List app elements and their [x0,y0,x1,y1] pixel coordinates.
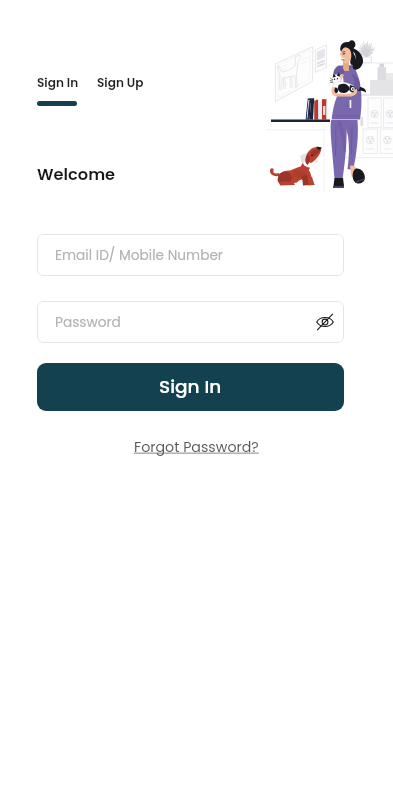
staticText: Email ID/ Mobile Number [55,246,223,265]
staticText: Welcome [37,163,116,186]
button[interactable]: Sign In [37,363,344,411]
button[interactable]: Forgot Password? [134,437,259,457]
staticText: Sign In [37,74,79,91]
button[interactable]: Email ID/ Mobile Number [37,234,344,276]
staticText: Password [55,313,121,332]
button[interactable]: Sign Up [97,74,144,91]
button[interactable]: Show password [311,308,339,336]
button[interactable]: Sign In [37,74,79,91]
staticText: Forgot Password? [134,437,259,457]
button[interactable]: Password [37,301,344,343]
staticText: Sign In [159,374,222,400]
staticText: Sign Up [97,74,144,91]
